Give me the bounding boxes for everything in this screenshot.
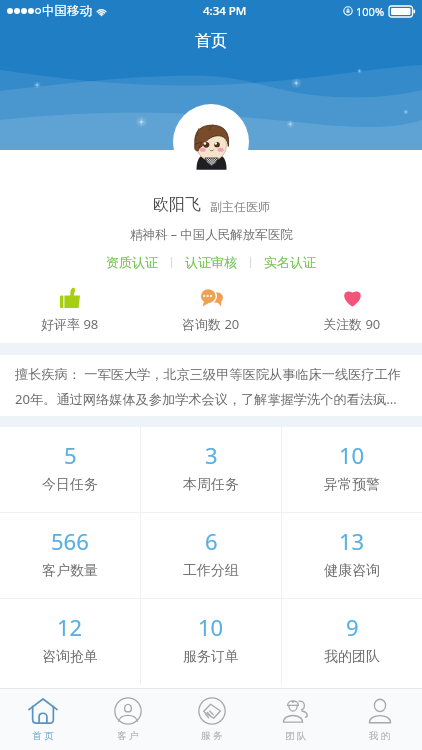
button[interactable]: 客户 <box>85 688 170 750</box>
staticText: 100% <box>356 4 385 19</box>
button[interactable]: 首页 <box>0 688 85 750</box>
staticText: 首页 <box>195 31 227 51</box>
button[interactable]: 实名认证 <box>262 254 318 270</box>
button[interactable]: 10 <box>141 599 281 684</box>
staticText: 好评率 98 <box>41 315 99 333</box>
staticText: 服 务 <box>201 729 223 742</box>
button[interactable]: 我的 <box>338 688 422 750</box>
staticText: 6 <box>205 526 218 556</box>
staticText: 本周任务 <box>183 476 239 494</box>
staticText: 服务订单 <box>183 648 239 666</box>
staticText: 关注数 90 <box>323 315 381 333</box>
staticText: 欧阳飞 <box>153 195 201 215</box>
staticText: 咨询数 20 <box>182 315 240 333</box>
staticText: 工作分组 <box>183 562 239 580</box>
staticText: 12 <box>57 612 83 642</box>
staticText: 异常预警 <box>324 476 380 494</box>
staticText: 首 页 <box>32 729 54 742</box>
button[interactable]: 9 <box>282 599 422 684</box>
staticText: 我的团队 <box>324 648 380 666</box>
staticText: 10 <box>339 440 365 470</box>
staticText: 客 户 <box>117 729 139 742</box>
staticText: 咨询抢单 <box>42 648 98 666</box>
staticText: 精神科 – 中国人民解放军医院 <box>130 226 293 243</box>
staticText: 副主任医师 <box>210 199 270 214</box>
staticText: 566 <box>51 526 89 556</box>
button[interactable]: 566 <box>0 513 140 598</box>
button[interactable]: 13 <box>282 513 422 598</box>
staticText: 今日任务 <box>42 476 98 494</box>
button[interactable]: 关注数 90 <box>281 287 422 333</box>
button[interactable]: 好评率 98 <box>0 287 140 333</box>
staticText: 4:34 PM <box>203 3 247 19</box>
staticText: 13 <box>339 526 365 556</box>
button[interactable]: 认证审核 <box>183 254 239 270</box>
button[interactable]: 咨询数 20 <box>140 287 281 333</box>
button[interactable]: 资质认证 <box>104 254 160 270</box>
staticText: 中国移动 <box>42 3 92 19</box>
button[interactable]: 12 <box>0 599 140 684</box>
staticText: 客户数量 <box>42 562 98 580</box>
button[interactable]: 3 <box>141 427 281 512</box>
button[interactable]: 团队 <box>254 688 338 750</box>
button[interactable]: 服务 <box>170 688 254 750</box>
button[interactable]: 10 <box>282 427 422 512</box>
staticText: 擅长疾病： 一军医大学，北京三级甲等医院从事临床一线医疗工作20年。通过网络媒体… <box>15 365 411 408</box>
staticText: 我 的 <box>369 729 391 742</box>
staticText: 9 <box>346 612 359 642</box>
staticText: 健康咨询 <box>324 562 380 580</box>
button[interactable]: 5 <box>0 427 140 512</box>
button[interactable]: 6 <box>141 513 281 598</box>
staticText: 5 <box>64 440 77 470</box>
button[interactable]: 头像 <box>173 104 249 180</box>
staticText: 3 <box>205 440 218 470</box>
staticText: 10 <box>198 612 224 642</box>
staticText: 团 队 <box>285 729 307 742</box>
